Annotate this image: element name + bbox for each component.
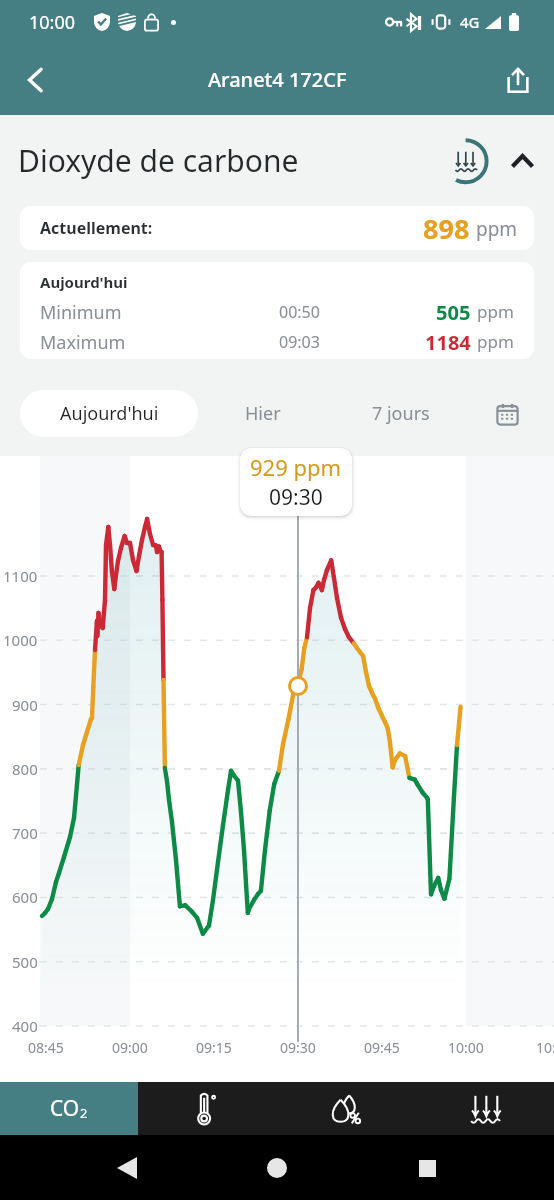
staticText: 1100 — [3, 566, 38, 586]
staticText: 505 — [436, 299, 471, 326]
button[interactable]: Share — [494, 56, 542, 104]
staticText: Aranet4 172CF — [208, 66, 347, 93]
staticText: 900 — [12, 695, 38, 715]
staticText: ppm — [477, 330, 514, 353]
button[interactable]: Aujourd'hui — [20, 262, 534, 359]
staticText: 10:00 — [448, 1038, 484, 1057]
staticText: 7 jours — [372, 401, 430, 426]
staticText: 898 — [423, 210, 470, 247]
button[interactable]: Carbon dioxide detail — [415, 1082, 554, 1135]
button[interactable]: Collapse section — [498, 137, 546, 185]
staticText: Hier — [245, 401, 281, 426]
staticText: 09:15 — [196, 1038, 232, 1057]
button[interactable]: Humidity — [276, 1082, 415, 1135]
staticText: 600 — [12, 887, 38, 907]
staticText: 10:00 — [29, 10, 76, 35]
button[interactable]: Back — [12, 56, 60, 104]
staticText: 10:1 — [536, 1038, 554, 1057]
staticText: 09:30 — [269, 483, 323, 512]
button[interactable]: Home — [254, 1145, 300, 1191]
staticText: 500 — [12, 952, 38, 972]
staticText: CO — [50, 1094, 80, 1123]
staticText: Maximum — [40, 330, 126, 355]
button[interactable]: Hier — [208, 390, 318, 437]
staticText: Actuellement: — [40, 217, 153, 239]
staticText: 08:45 — [28, 1038, 64, 1057]
button[interactable]: Recent apps — [404, 1145, 450, 1191]
staticText: 400 — [12, 1016, 38, 1036]
staticText: ppm — [476, 216, 518, 242]
button[interactable]: Temperature — [138, 1082, 276, 1135]
staticText: 1000 — [3, 630, 38, 650]
staticText: 00:50 — [279, 301, 320, 323]
staticText: 929 ppm — [250, 452, 342, 482]
button[interactable]: Pick date — [485, 392, 529, 436]
staticText: 09:03 — [279, 331, 320, 353]
staticText: 4G — [460, 12, 480, 32]
staticText: 700 — [12, 823, 38, 843]
staticText: ppm — [477, 300, 514, 323]
staticText: Minimum — [40, 300, 122, 325]
button[interactable]: 7 jours — [340, 390, 462, 437]
staticText: 1184 — [425, 329, 471, 356]
staticText: Aujourd'hui — [40, 272, 128, 292]
staticText: Dioxyde de carbone — [18, 140, 299, 181]
staticText: 09:45 — [364, 1038, 400, 1057]
staticText: 09:30 — [280, 1038, 316, 1057]
button[interactable]: Actuellement: — [20, 206, 534, 250]
button[interactable]: Back — [104, 1145, 150, 1191]
staticText: 2 — [80, 1104, 88, 1122]
staticText: 09:00 — [112, 1038, 148, 1057]
button[interactable]: CO — [0, 1082, 138, 1135]
staticText: Aujourd'hui — [60, 401, 159, 426]
staticText: 800 — [12, 759, 38, 779]
button[interactable]: Aujourd'hui — [20, 390, 198, 437]
